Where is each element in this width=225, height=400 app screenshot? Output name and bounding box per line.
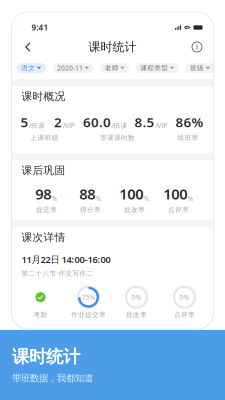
staticText: % (144, 194, 150, 203)
staticText: /班课 (112, 121, 128, 130)
button[interactable]: 班级 (186, 63, 215, 73)
staticText: 86% (175, 113, 203, 131)
staticText: 课时统计 (12, 346, 80, 367)
staticText: 88 (79, 184, 95, 204)
staticText: % (188, 194, 194, 203)
staticText: % (96, 194, 102, 203)
staticText: i (196, 43, 198, 51)
staticText: /班课 (29, 121, 45, 130)
staticText: 得分率 (80, 206, 101, 214)
staticText: 75% (81, 293, 95, 302)
staticText: 课后巩固 (21, 164, 65, 177)
staticText: 5 (20, 113, 28, 131)
staticText: /VIP (155, 121, 167, 130)
staticText: 课次详情 (21, 231, 65, 244)
staticText: 批改率 (126, 311, 147, 319)
staticText: % (52, 194, 58, 203)
button[interactable]: 老师 (100, 63, 129, 73)
staticText: /VIP (63, 121, 75, 130)
staticText: 点评率 (168, 206, 189, 214)
staticText: 考勤 (33, 311, 47, 319)
staticText: 续班率 (177, 134, 198, 142)
staticText: 提交率 (36, 206, 57, 214)
staticText: 带班数据，我都知道 (12, 372, 93, 384)
staticText: 2 (54, 113, 62, 131)
staticText: 100 (163, 184, 187, 204)
staticText: 语文 (21, 64, 35, 72)
staticText: 第二十八节 作文写作二 (21, 269, 93, 278)
staticText: 课程类型 (140, 64, 168, 72)
button[interactable]: 2020-11 (52, 63, 94, 73)
staticText: 作业提交率 (71, 311, 106, 319)
staticText: 0% (179, 293, 189, 302)
staticText: 点评率 (174, 311, 195, 319)
staticText: 2020-11 (57, 64, 83, 72)
button[interactable]: Back (19, 38, 36, 55)
staticText: 课时统计 (88, 40, 136, 54)
staticText: 0% (131, 293, 141, 302)
staticText: 100 (119, 184, 143, 204)
staticText: 8.5 (135, 113, 155, 131)
staticText: 11月22日 14:00-16:00 (21, 253, 110, 265)
staticText: 老师 (105, 64, 119, 72)
button[interactable]: 语文 (17, 63, 46, 73)
staticText: 课时概况 (21, 90, 65, 103)
staticText: 98 (35, 184, 51, 204)
staticText: 上课班级 (30, 134, 58, 142)
button[interactable]: Info (188, 38, 205, 55)
staticText: 管课课时数 (100, 134, 135, 142)
staticText: 班级 (190, 64, 204, 72)
staticText: 60.0 (83, 113, 111, 131)
button[interactable]: 课程类型 (136, 63, 179, 73)
staticText: 批改率 (124, 206, 145, 214)
staticText: 9:41 (31, 22, 48, 33)
